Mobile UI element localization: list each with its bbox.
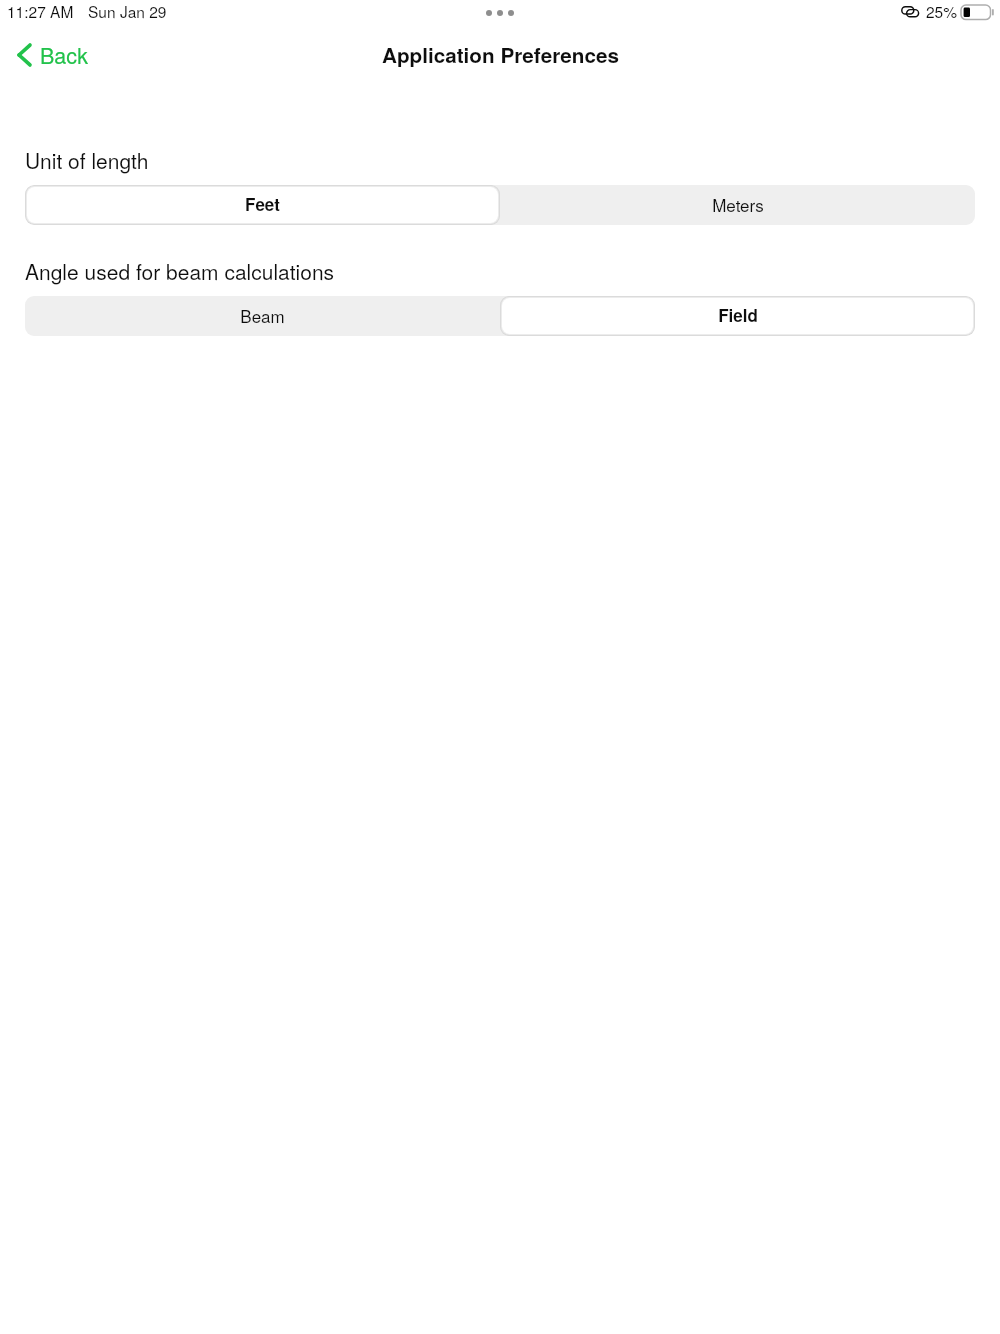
other: Back xyxy=(17,43,32,67)
button[interactable]: Meters xyxy=(500,185,975,225)
button[interactable]: Beam xyxy=(25,296,500,336)
button[interactable]: Back xyxy=(9,33,96,76)
staticText: 25% xyxy=(926,0,958,22)
staticText: Angle used for beam calculations xyxy=(25,256,335,286)
staticText: Meters xyxy=(712,192,764,216)
staticText: Field xyxy=(718,303,758,327)
button[interactable]: Feet xyxy=(27,187,498,223)
button[interactable]: Field xyxy=(502,298,973,334)
staticText: Unit of length xyxy=(25,145,149,175)
staticText: Sun Jan 29 xyxy=(88,0,167,22)
staticText: Beam xyxy=(240,303,285,327)
staticText: Application Preferences xyxy=(382,40,619,70)
staticText: 11:27 AM xyxy=(7,0,74,22)
staticText: Back xyxy=(40,39,88,70)
staticText: Feet xyxy=(245,192,280,216)
